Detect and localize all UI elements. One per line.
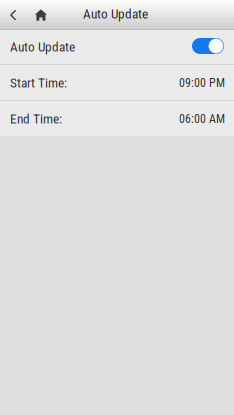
staticText: End Time:: [10, 111, 62, 127]
button[interactable]: Start Time:: [0, 66, 234, 102]
staticText: Auto Update: [83, 6, 148, 22]
staticText: Auto Update: [10, 39, 75, 55]
staticText: 06:00 AM: [179, 112, 225, 126]
staticText: Start Time:: [10, 75, 67, 91]
button[interactable]: Home: [26, 0, 57, 29]
button[interactable]: Auto Update, on: [192, 35, 225, 59]
button[interactable]: Back: [0, 0, 26, 29]
staticText: 09:00 PM: [179, 76, 225, 90]
button[interactable]: End Time:: [0, 102, 234, 136]
